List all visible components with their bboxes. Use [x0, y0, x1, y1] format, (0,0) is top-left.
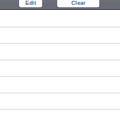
staticText: Edit — [25, 0, 36, 6]
staticText: Clear — [71, 0, 85, 6]
button[interactable]: Clear — [57, 0, 100, 8]
button[interactable]: Edit — [19, 0, 43, 8]
